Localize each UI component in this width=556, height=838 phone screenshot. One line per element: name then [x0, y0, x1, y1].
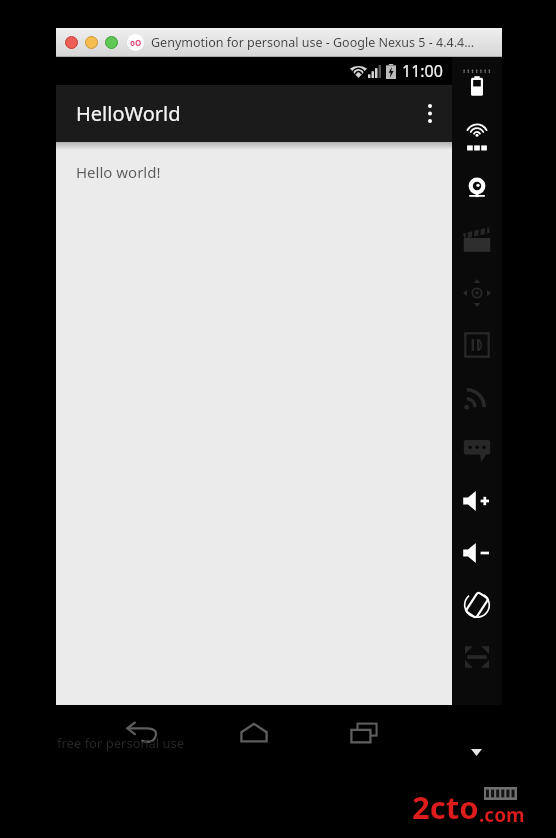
staticText: .com [479, 802, 525, 828]
button[interactable]: Minimise [85, 36, 98, 49]
button[interactable]: Genymotion [127, 34, 144, 51]
staticText: Genymotion for personal use - Google Nex… [151, 34, 475, 51]
button[interactable]: Actual size [452, 631, 502, 683]
staticText: 11:00 [402, 60, 443, 82]
button[interactable]: Camera [452, 163, 502, 215]
button[interactable]: SMS [452, 423, 502, 475]
button[interactable]: Expand toolbar [464, 740, 488, 764]
button[interactable]: Close [65, 36, 78, 49]
button[interactable]: Recents [339, 711, 391, 755]
button[interactable]: Home [228, 711, 280, 755]
button[interactable]: Network [452, 371, 502, 423]
button[interactable]: More options [408, 85, 452, 142]
button[interactable]: Accelerometer [452, 267, 502, 319]
button[interactable]: Identifiers [452, 319, 502, 371]
staticText: oO [130, 37, 142, 48]
button[interactable]: Volume up [452, 475, 502, 527]
staticText: Hello world! [76, 162, 161, 182]
button[interactable]: Volume down [452, 527, 502, 579]
button[interactable]: Back [117, 711, 169, 755]
staticText: 2cto [412, 786, 479, 828]
staticText: HelloWorld [76, 100, 181, 127]
button[interactable]: Battery [452, 59, 502, 111]
button[interactable]: Video recording [452, 215, 502, 267]
staticText: free for personal use [57, 734, 185, 752]
button[interactable]: GPS [452, 111, 502, 163]
button[interactable]: Rotate [452, 579, 502, 631]
button[interactable]: Zoom [105, 36, 118, 49]
